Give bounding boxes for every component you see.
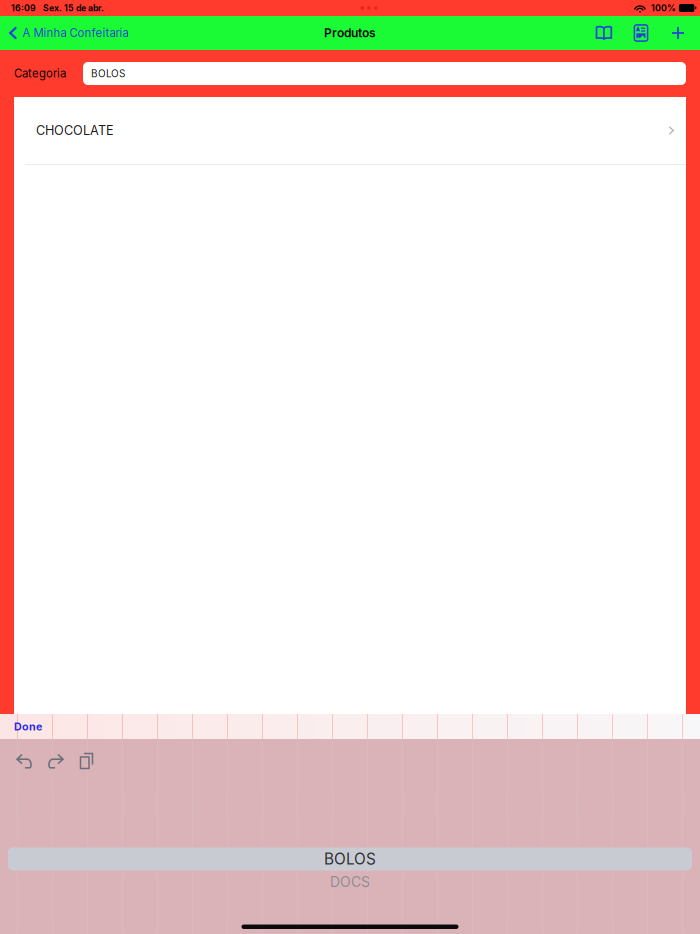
staticText: BOLOS — [324, 850, 376, 868]
button[interactable]: Add — [663, 16, 693, 50]
button[interactable]: BOLOS — [0, 847, 700, 870]
staticText: Done — [14, 720, 42, 733]
staticText: 16:09 — [11, 3, 36, 13]
staticText: CHOCOLATE — [36, 123, 114, 138]
staticText: Categoria — [14, 67, 66, 80]
button[interactable]: Done — [0, 714, 56, 739]
button[interactable]: Details — [626, 16, 656, 50]
staticText: A Minha Confeitaria — [22, 26, 128, 40]
staticText: BOLOS — [91, 67, 125, 80]
button[interactable]: Redo — [42, 748, 69, 775]
button[interactable]: Paste — [73, 748, 100, 775]
button[interactable]: CHOCOLATE — [14, 97, 686, 164]
button[interactable]: Catalogue — [589, 16, 619, 50]
button[interactable]: BOLOS — [83, 62, 686, 85]
staticText: 100% — [651, 3, 676, 13]
button[interactable]: Undo — [11, 748, 38, 775]
staticText: DOCS — [330, 873, 370, 890]
staticText: Sex. 15 de abr. — [43, 3, 104, 13]
button[interactable]: DOCS — [0, 870, 700, 893]
staticText: Produtos — [324, 26, 376, 40]
button[interactable]: A Minha Confeitaria — [0, 16, 134, 50]
